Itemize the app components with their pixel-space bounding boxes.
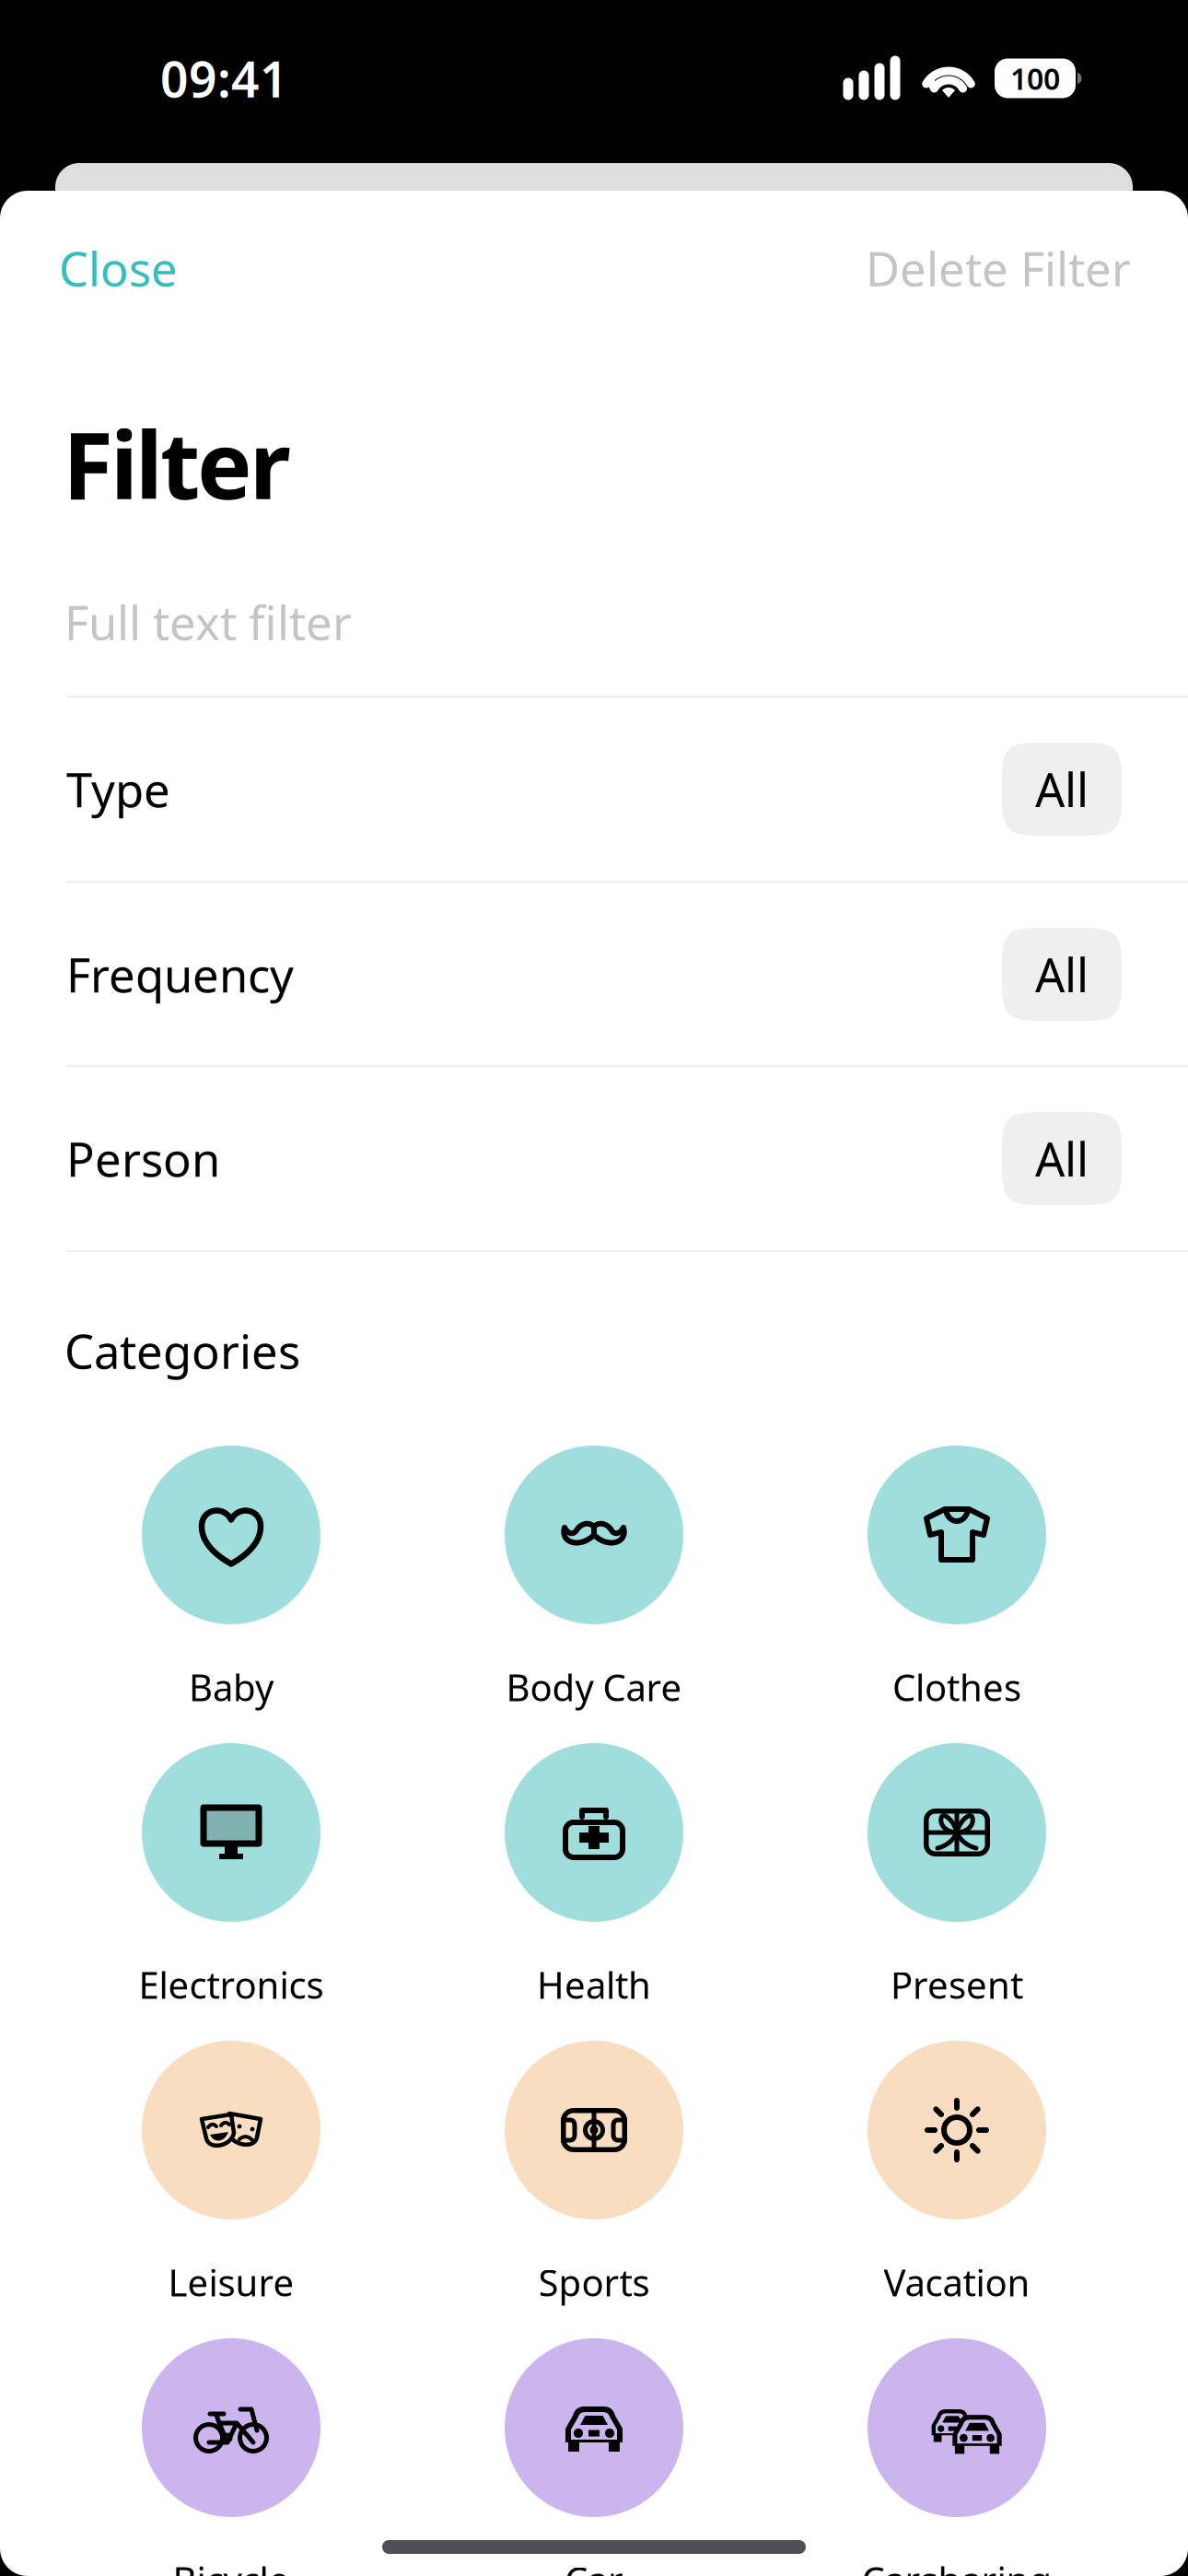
button[interactable]: Type — [0, 697, 1188, 882]
button[interactable]: Health — [413, 1743, 775, 2010]
button[interactable]: Bicycle — [50, 2338, 413, 2576]
staticText: Filter — [63, 402, 291, 525]
staticText: All — [1035, 943, 1089, 1005]
staticText: Leisure — [168, 2258, 294, 2307]
staticText: 100 — [1010, 59, 1060, 98]
button[interactable]: Leisure — [50, 2041, 413, 2308]
staticText: All — [1035, 1128, 1089, 1190]
button[interactable]: Present — [775, 1743, 1138, 2010]
button[interactable]: Carsharing — [775, 2338, 1138, 2576]
button[interactable]: Body Care — [413, 1446, 775, 1713]
button[interactable]: Electronics — [50, 1743, 413, 2010]
staticText: Close — [59, 237, 178, 299]
staticText: Person — [66, 1128, 220, 1190]
staticText: Categories — [64, 1320, 300, 1382]
button[interactable]: Delete Filter — [809, 231, 1188, 305]
button[interactable]: Car — [413, 2338, 775, 2576]
staticText: All — [1035, 758, 1089, 820]
staticText: Electronics — [139, 1960, 324, 2009]
staticText: Carsharing — [862, 2555, 1052, 2576]
button[interactable]: Vacation — [775, 2041, 1138, 2308]
button[interactable]: Frequency — [0, 882, 1188, 1067]
staticText: Clothes — [892, 1662, 1021, 1711]
button[interactable]: Close — [0, 231, 237, 305]
staticText: Delete Filter — [866, 237, 1131, 299]
staticText: Frequency — [66, 943, 294, 1005]
staticText: Vacation — [884, 2258, 1030, 2307]
staticText: Full text filter — [64, 591, 352, 653]
button[interactable]: Sports — [413, 2041, 775, 2308]
staticText: Health — [537, 1960, 651, 2009]
staticText: Car — [565, 2555, 623, 2576]
staticText: Body Care — [506, 1662, 682, 1711]
staticText: 09:41 — [160, 46, 288, 111]
staticText: Present — [891, 1960, 1023, 2009]
staticText: Type — [66, 758, 170, 820]
button[interactable]: Clothes — [775, 1446, 1138, 1713]
staticText: Bicycle — [173, 2555, 290, 2576]
staticText: Sports — [538, 2258, 650, 2307]
button[interactable]: Person — [0, 1066, 1188, 1251]
staticText: Baby — [189, 1662, 274, 1711]
button[interactable]: Baby — [50, 1446, 413, 1713]
